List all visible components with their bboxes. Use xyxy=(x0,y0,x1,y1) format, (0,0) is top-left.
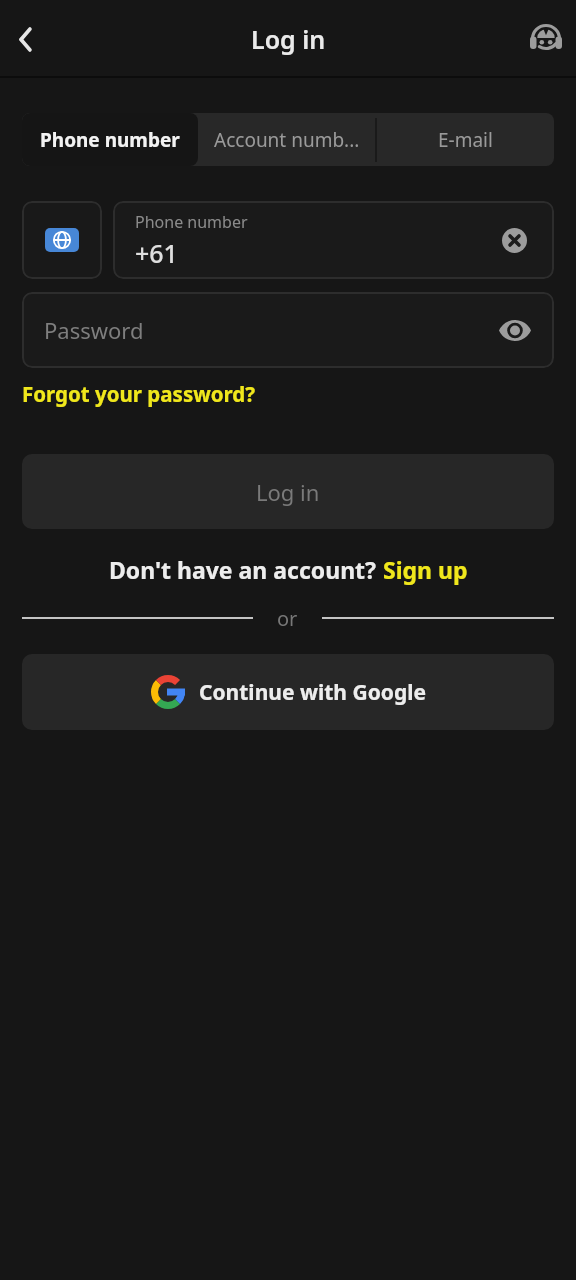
staticText: Continue with Google xyxy=(199,678,426,707)
staticText: Log in xyxy=(251,22,326,56)
staticText: +61 xyxy=(135,236,178,270)
staticText: Account numb... xyxy=(214,127,360,153)
staticText: E-mail xyxy=(438,127,493,153)
staticText: or xyxy=(277,605,298,632)
button[interactable]: E-mail xyxy=(377,113,554,166)
button[interactable]: Forgot your password? xyxy=(22,380,256,408)
button[interactable]: Phone number xyxy=(113,201,554,279)
staticText: Phone number xyxy=(135,211,248,233)
button[interactable]: Phone number xyxy=(22,113,198,166)
button[interactable]: Password xyxy=(22,292,554,368)
staticText: Log in xyxy=(256,477,320,507)
button[interactable]: Log in xyxy=(22,454,554,529)
button[interactable]: Continue with Google xyxy=(22,654,554,730)
button[interactable]: Account numb... xyxy=(198,113,375,166)
button[interactable] xyxy=(3,17,47,61)
button[interactable]: Sign up xyxy=(383,554,468,585)
staticText: Don't have an account? xyxy=(109,554,383,585)
button[interactable] xyxy=(22,201,102,279)
staticText: Password xyxy=(44,315,144,345)
button[interactable] xyxy=(524,17,568,61)
staticText: Phone number xyxy=(40,127,180,153)
